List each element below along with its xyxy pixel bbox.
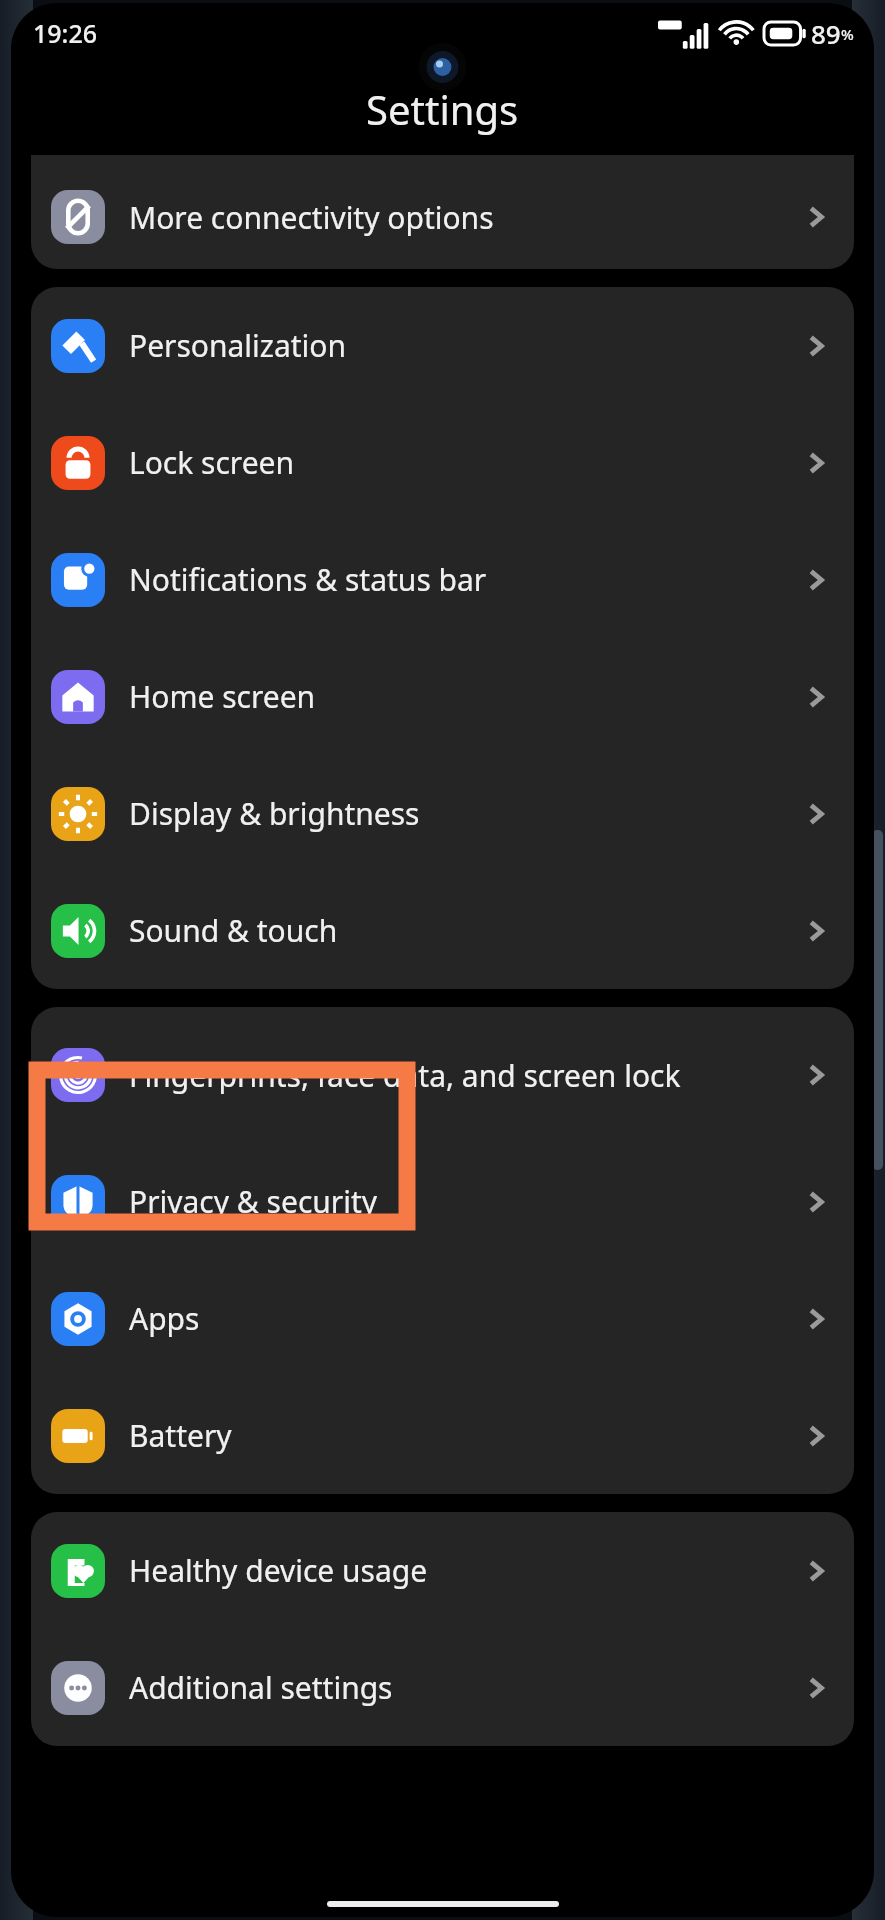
button[interactable]: Battery xyxy=(31,1377,854,1494)
button[interactable]: Notifications & status bar xyxy=(31,521,854,638)
staticText: % xyxy=(841,24,854,44)
button[interactable]: More connectivity options xyxy=(31,165,854,269)
staticText: Additional settings xyxy=(129,1667,393,1708)
button[interactable]: Sound & touch xyxy=(31,872,854,989)
button[interactable]: Healthy device usage xyxy=(31,1512,854,1629)
button[interactable]: Privacy & security xyxy=(31,1143,854,1260)
button[interactable]: Apps xyxy=(31,1260,854,1377)
staticText: Display & brightness xyxy=(129,793,420,834)
staticText: 19:26 xyxy=(33,16,98,50)
button[interactable]: Lock screen xyxy=(31,404,854,521)
button[interactable]: Personalization xyxy=(31,287,854,404)
staticText: Privacy & security xyxy=(129,1181,378,1222)
staticText: More connectivity options xyxy=(129,197,494,238)
staticText: Settings xyxy=(366,82,519,136)
staticText: Lock screen xyxy=(129,442,295,483)
staticText: Healthy device usage xyxy=(129,1550,428,1591)
staticText: Personalization xyxy=(129,325,347,366)
staticText: Battery xyxy=(129,1415,232,1456)
button[interactable]: Home screen xyxy=(31,638,854,755)
button[interactable]: Display & brightness xyxy=(31,755,854,872)
button[interactable]: Fingerprints, face data, and screen lock xyxy=(31,1007,854,1143)
staticText: Fingerprints, face data, and screen lock xyxy=(129,1055,681,1096)
staticText: Apps xyxy=(129,1298,200,1339)
staticText: 89 xyxy=(811,16,841,51)
staticText: Sound & touch xyxy=(129,910,338,951)
staticText: Notifications & status bar xyxy=(129,559,487,600)
button[interactable]: Additional settings xyxy=(31,1629,854,1746)
staticText: Home screen xyxy=(129,676,316,717)
